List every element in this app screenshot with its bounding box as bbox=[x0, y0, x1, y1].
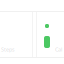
staticText: Steps bbox=[1, 46, 15, 53]
staticText: Cal bbox=[55, 46, 62, 53]
